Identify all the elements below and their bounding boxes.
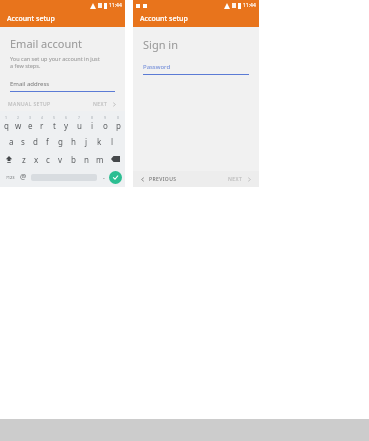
- staticText: NEXT: [228, 176, 243, 183]
- staticText: 2: [17, 115, 20, 120]
- button[interactable]: s: [17, 132, 29, 150]
- staticText: p: [116, 120, 121, 131]
- staticText: i: [91, 120, 94, 131]
- button[interactable]: Shift: [0, 150, 18, 168]
- button[interactable]: 6: [60, 114, 73, 132]
- staticText: v: [58, 154, 63, 165]
- button[interactable]: 9: [99, 114, 112, 132]
- staticText: r: [40, 120, 44, 131]
- staticText: w: [15, 120, 22, 131]
- staticText: o: [103, 120, 108, 131]
- button[interactable]: NEXT: [228, 176, 252, 183]
- button[interactable]: Password: [143, 63, 249, 75]
- button[interactable]: d: [29, 132, 41, 150]
- staticText: 9: [104, 115, 107, 120]
- staticText: PREVIOUS: [149, 176, 177, 183]
- button[interactable]: b: [67, 150, 80, 168]
- button[interactable]: n: [80, 150, 93, 168]
- button[interactable]: 0: [112, 114, 125, 132]
- button[interactable]: ?123: [3, 168, 17, 186]
- button[interactable]: k: [93, 132, 106, 150]
- staticText: l: [111, 136, 114, 147]
- staticText: y: [64, 120, 69, 131]
- staticText: k: [97, 136, 102, 147]
- button[interactable]: z: [18, 150, 30, 168]
- button[interactable]: c: [42, 150, 54, 168]
- button[interactable]: 4: [36, 114, 48, 132]
- staticText: b: [71, 154, 76, 165]
- staticText: NEXT: [93, 101, 108, 108]
- button[interactable]: 3: [24, 114, 36, 132]
- staticText: u: [77, 120, 82, 131]
- staticText: Account setup: [140, 14, 188, 24]
- staticText: t: [53, 120, 56, 131]
- button[interactable]: Email address: [10, 80, 115, 92]
- staticText: You can set up your account in just: [10, 55, 100, 62]
- staticText: c: [46, 154, 50, 165]
- staticText: q: [4, 120, 9, 131]
- staticText: Email address: [10, 80, 50, 88]
- staticText: g: [58, 136, 63, 147]
- button[interactable]: 8: [86, 114, 99, 132]
- button[interactable]: a: [5, 132, 17, 150]
- staticText: z: [22, 154, 26, 165]
- staticText: h: [71, 136, 76, 147]
- other: Next: [247, 177, 252, 182]
- staticText: 0: [117, 115, 120, 120]
- staticText: 1: [5, 115, 8, 120]
- staticText: .: [103, 172, 105, 182]
- staticText: 11:44: [243, 2, 256, 9]
- staticText: d: [33, 136, 38, 147]
- staticText: Email account: [10, 36, 83, 51]
- staticText: 4: [41, 115, 44, 120]
- button[interactable]: h: [67, 132, 80, 150]
- staticText: MANUAL SETUP: [8, 101, 51, 108]
- button[interactable]: m: [93, 150, 106, 168]
- staticText: Password: [143, 63, 171, 71]
- staticText: ?123: [6, 175, 15, 180]
- staticText: 3: [29, 115, 32, 120]
- button[interactable]: @: [17, 168, 29, 186]
- staticText: n: [84, 154, 89, 165]
- staticText: j: [85, 136, 88, 147]
- button[interactable]: 1: [0, 114, 12, 132]
- button[interactable]: Backspace: [106, 150, 125, 168]
- staticText: 8: [91, 115, 94, 120]
- button[interactable]: .: [99, 168, 109, 186]
- button[interactable]: x: [30, 150, 42, 168]
- button[interactable]: f: [41, 132, 54, 150]
- staticText: a: [9, 136, 14, 147]
- staticText: 5: [53, 115, 56, 120]
- staticText: 6: [65, 115, 68, 120]
- button[interactable]: NEXT: [93, 101, 117, 108]
- button[interactable]: 2: [12, 114, 24, 132]
- button[interactable]: MANUAL SETUP: [8, 101, 51, 108]
- button[interactable]: 7: [73, 114, 86, 132]
- staticText: a few steps.: [10, 62, 41, 69]
- other: Next: [112, 102, 117, 107]
- button[interactable]: g: [54, 132, 67, 150]
- other: Previous: [140, 177, 145, 182]
- staticText: Sign in: [143, 37, 178, 52]
- staticText: m: [96, 154, 104, 165]
- staticText: @: [20, 172, 27, 182]
- staticText: x: [34, 154, 39, 165]
- staticText: 7: [78, 115, 81, 120]
- button[interactable]: 5: [48, 114, 60, 132]
- staticText: 11:44: [109, 2, 122, 9]
- button[interactable]: Previous: [140, 176, 177, 183]
- staticText: Account setup: [7, 14, 55, 24]
- staticText: e: [28, 120, 33, 131]
- staticText: f: [46, 136, 49, 147]
- staticText: s: [21, 136, 25, 147]
- button[interactable]: Done: [109, 171, 122, 184]
- button[interactable]: l: [106, 132, 119, 150]
- button[interactable]: v: [54, 150, 67, 168]
- button[interactable]: j: [80, 132, 93, 150]
